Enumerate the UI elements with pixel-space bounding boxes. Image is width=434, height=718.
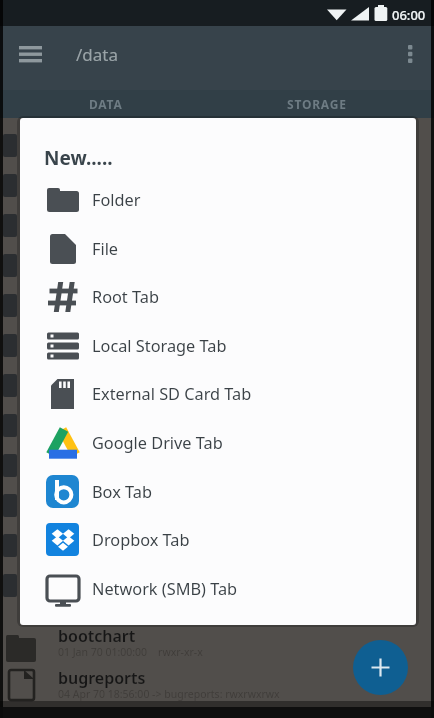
button[interactable]: External SD Card Tab <box>22 370 412 418</box>
button[interactable] <box>12 39 50 71</box>
button[interactable]: bugreports <box>0 666 434 706</box>
staticText: Google Drive Tab <box>92 432 223 454</box>
staticText: New..... <box>44 145 113 171</box>
staticText: Folder <box>92 189 141 211</box>
staticText: Root Tab <box>92 286 159 308</box>
button[interactable]: bootchart <box>0 624 434 666</box>
button[interactable]: Folder <box>22 176 412 224</box>
staticText: External SD Card Tab <box>92 383 252 405</box>
staticText: /data <box>76 43 118 66</box>
button[interactable]: Root Tab <box>22 273 412 321</box>
button[interactable]: Network (SMB) Tab <box>22 565 412 613</box>
staticText: bootchart <box>58 625 136 647</box>
staticText: 04 Apr 70 18:56:00 -> bugreports: rwxrwx… <box>58 687 280 701</box>
button[interactable]: Box Tab <box>22 468 412 516</box>
staticText: 06:00 <box>392 6 426 24</box>
button[interactable]: File <box>22 225 412 273</box>
button[interactable]: STORAGE <box>267 90 367 118</box>
staticText: Network (SMB) Tab <box>92 578 238 600</box>
button[interactable]: Google Drive Tab <box>22 419 412 467</box>
button[interactable] <box>396 38 424 78</box>
staticText: File <box>92 238 119 260</box>
staticText: Dropbox Tab <box>92 529 190 551</box>
staticText: Box Tab <box>92 481 152 503</box>
staticText: Local Storage Tab <box>92 335 227 357</box>
staticText: DATA <box>89 96 123 112</box>
button[interactable]: DATA <box>56 90 156 118</box>
staticText: 01 Jan 70 01:00:00 rwxr-xr-x <box>58 645 203 659</box>
staticText: bugreports <box>58 667 146 689</box>
button[interactable] <box>353 640 408 695</box>
button[interactable]: Dropbox Tab <box>22 516 412 564</box>
button[interactable]: Local Storage Tab <box>22 322 412 370</box>
staticText: STORAGE <box>287 96 347 112</box>
